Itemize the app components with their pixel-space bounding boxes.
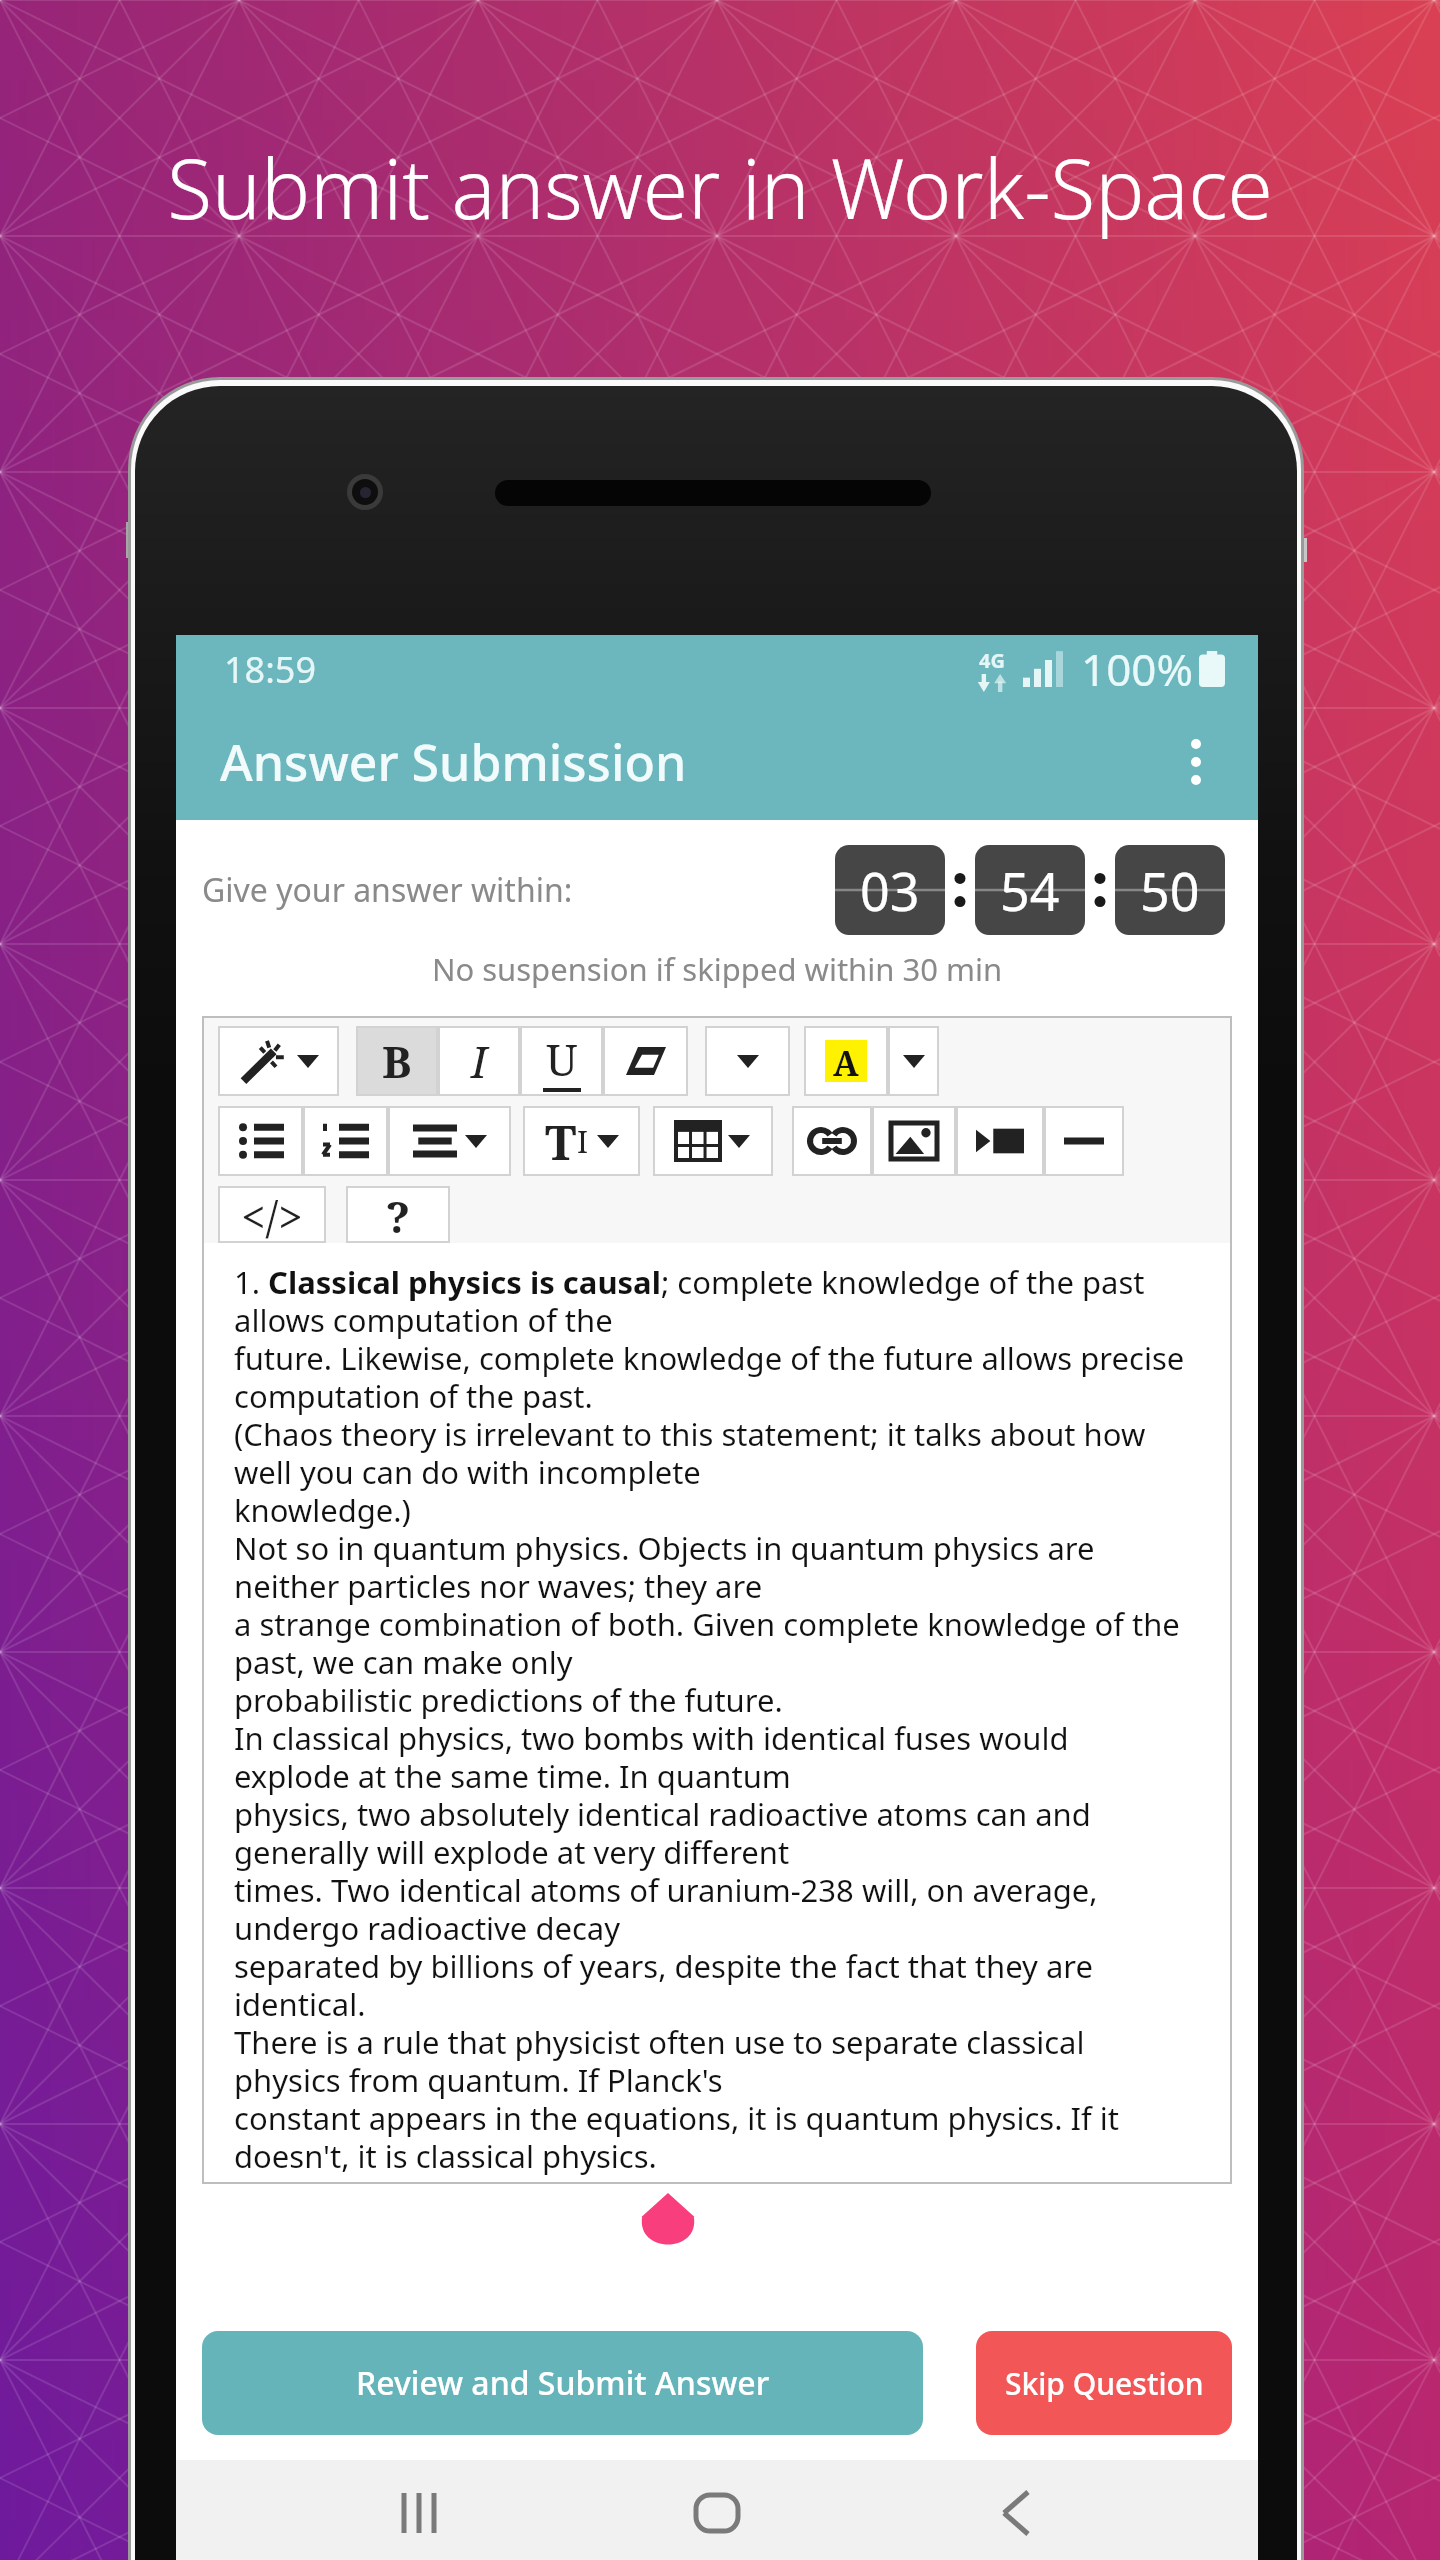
staticText: No suspension if skipped within 30 min [176, 948, 1258, 990]
staticText: Review and Submit Answer [356, 2361, 770, 2405]
button[interactable]: Home [661, 2460, 773, 2560]
staticText: 100% [1081, 639, 1194, 699]
button[interactable]: Text size [523, 1106, 640, 1176]
staticText: I [471, 1031, 488, 1091]
staticText: 18:59 [224, 645, 317, 694]
button[interactable]: Style [218, 1026, 339, 1096]
staticText: Skip Question [1005, 2363, 1204, 2404]
button[interactable]: More text options [705, 1026, 790, 1096]
staticText: U [546, 1029, 578, 1089]
staticText: 50 [1140, 855, 1200, 926]
button[interactable]: View source [218, 1186, 326, 1243]
staticText: 4G [979, 647, 1005, 674]
button[interactable]: Skip Question [976, 2331, 1232, 2435]
button[interactable]: Italic [438, 1026, 520, 1096]
staticText: ? [386, 1186, 411, 1243]
button[interactable]: More options [1160, 726, 1232, 798]
button[interactable]: Highlight colour [804, 1026, 888, 1096]
button[interactable]: Bulleted list [218, 1106, 303, 1176]
button[interactable]: Underline [520, 1026, 603, 1096]
button[interactable]: Horizontal rule [1044, 1106, 1124, 1176]
staticText: 54 [1000, 855, 1060, 926]
button[interactable]: Insert table [653, 1106, 773, 1176]
button[interactable]: Insert link [792, 1106, 872, 1176]
staticText: </> [241, 1186, 303, 1243]
staticText: Give your answer within: [202, 868, 573, 912]
button[interactable]: Align [388, 1106, 511, 1176]
button[interactable]: Insert image [872, 1106, 956, 1176]
button[interactable]: Bold [356, 1026, 438, 1096]
button[interactable]: Numbered list [303, 1106, 388, 1176]
button[interactable]: Back [960, 2460, 1072, 2560]
button[interactable]: More colours [888, 1026, 939, 1096]
button[interactable]: Help [346, 1186, 450, 1243]
staticText: I [577, 1121, 589, 1162]
staticText: T [545, 1109, 577, 1174]
button[interactable]: Recent apps [363, 2460, 475, 2560]
button[interactable]: Insert video [956, 1106, 1044, 1176]
staticText: B [382, 1031, 412, 1091]
staticText: Submit answer in Work-Space [167, 131, 1273, 243]
staticText: 03 [860, 855, 920, 926]
button[interactable]: Clear formatting [603, 1026, 688, 1096]
staticText: 1. Classical physics is causal; complete… [234, 1261, 1185, 2177]
staticText: Answer Submission [220, 728, 687, 796]
staticText: A [833, 1040, 859, 1082]
button[interactable]: Review and Submit Answer [202, 2331, 923, 2435]
